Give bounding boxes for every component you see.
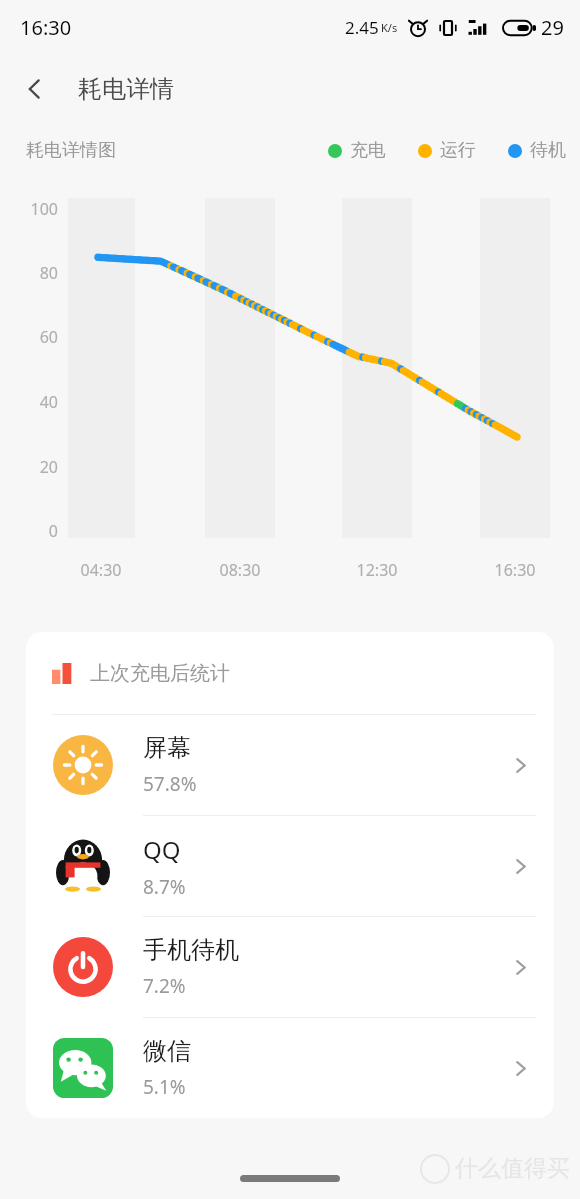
button[interactable]: 手机待机	[26, 917, 554, 1018]
button[interactable]: 微信	[26, 1018, 554, 1118]
staticText: 60	[18, 326, 58, 348]
button[interactable]: Back	[11, 65, 59, 113]
staticText: 屏幕	[143, 733, 191, 763]
staticText: 7.2%	[143, 973, 186, 999]
staticText: 充电	[350, 139, 386, 162]
staticText: 12:30	[341, 559, 413, 581]
staticText: 80	[18, 262, 58, 284]
staticText: 耗电详情	[78, 74, 174, 104]
staticText: 8.7%	[143, 874, 186, 900]
button[interactable]: QQ	[26, 816, 554, 917]
staticText: 耗电详情图	[26, 139, 116, 162]
staticText: 运行	[440, 139, 476, 162]
staticText: QQ	[143, 833, 181, 866]
staticText: 待机	[530, 139, 566, 162]
staticText: 什么值得买	[455, 1154, 570, 1183]
staticText: K/s	[381, 20, 398, 35]
staticText: 57.8%	[143, 771, 197, 797]
button[interactable]: 屏幕	[26, 715, 554, 816]
staticText: 100	[18, 198, 58, 220]
staticText: 29	[541, 14, 564, 41]
staticText: 手机待机	[143, 935, 239, 965]
staticText: 0	[18, 520, 58, 542]
staticText: 40	[18, 391, 58, 413]
staticText: 2.45	[345, 16, 379, 39]
staticText: 16:30	[479, 559, 551, 581]
staticText: 16:30	[20, 14, 72, 41]
staticText: 08:30	[204, 559, 276, 581]
staticText: 5.1%	[143, 1074, 186, 1100]
staticText: 20	[18, 456, 58, 478]
staticText: 微信	[143, 1036, 191, 1066]
staticText: 04:30	[65, 559, 137, 581]
staticText: 上次充电后统计	[90, 661, 230, 686]
